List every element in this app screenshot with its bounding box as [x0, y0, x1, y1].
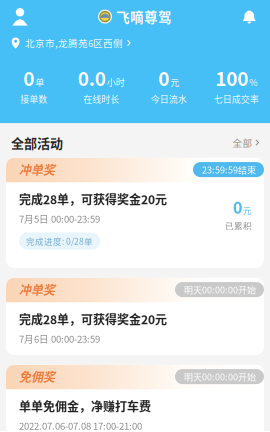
- staticText: 全部活动: [11, 133, 63, 152]
- button[interactable]: 全部: [232, 134, 259, 151]
- staticText: 接单数: [20, 92, 47, 105]
- staticText: 单: [35, 75, 44, 88]
- staticText: 免佣奖: [19, 368, 55, 385]
- staticText: 完成28单，可获得奖金20元: [19, 190, 167, 208]
- staticText: 0: [23, 64, 34, 91]
- staticText: 冲单奖: [19, 281, 55, 298]
- staticText: 0: [158, 64, 169, 91]
- staticText: 明天00:00:00开始: [184, 283, 256, 296]
- staticText: 在线时长: [83, 92, 119, 105]
- staticText: 全部: [232, 136, 252, 149]
- staticText: 完成进度: 0/28单: [26, 235, 93, 247]
- staticText: 0: [233, 195, 242, 218]
- staticText: 7月5日 00:00-23:59: [19, 212, 100, 225]
- staticText: 2022.07.06-07.08 17:00-21:00: [19, 419, 142, 432]
- staticText: 已累积: [225, 219, 252, 232]
- button[interactable]: 免佣奖: [6, 365, 264, 432]
- button[interactable]: Notifications: [235, 4, 270, 29]
- staticText: 北京市,龙腾苑6区西侧: [25, 36, 123, 50]
- staticText: 冲单奖: [19, 161, 55, 178]
- staticText: 明天00:00:00开始: [184, 370, 256, 383]
- button[interactable]: Profile: [0, 4, 35, 29]
- staticText: 7月6日 00:00-23:59: [19, 332, 100, 345]
- button[interactable]: 北京市,龙腾苑6区西侧: [0, 29, 270, 50]
- staticText: 今日流水: [151, 92, 187, 105]
- staticText: 23:59:59结束: [202, 163, 256, 176]
- staticText: 小时: [107, 75, 125, 88]
- staticText: 完成28单，可获得奖金20元: [19, 310, 167, 328]
- staticText: 元: [243, 204, 252, 216]
- staticText: 飞嘀尊驾: [116, 7, 172, 26]
- staticText: 100: [215, 64, 248, 91]
- staticText: 单单免佣金，净赚打车费: [19, 397, 151, 415]
- staticText: 元: [170, 75, 179, 88]
- staticText: 0.0: [78, 64, 106, 91]
- staticText: 七日成交率: [214, 92, 259, 105]
- button[interactable]: 冲单奖: [6, 158, 264, 268]
- button[interactable]: 冲单奖: [6, 278, 264, 355]
- staticText: %: [249, 75, 257, 88]
